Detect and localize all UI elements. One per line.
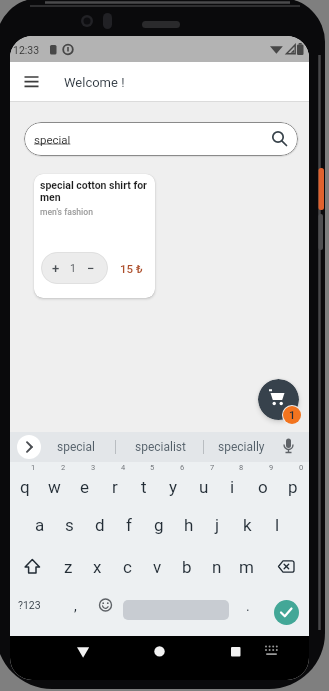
staticText: m (239, 557, 254, 577)
button[interactable]: y (159, 472, 188, 502)
button[interactable]: o (248, 472, 277, 502)
staticText: l (275, 515, 280, 535)
staticText: 3 (91, 463, 96, 472)
button[interactable]: j (203, 510, 232, 540)
button[interactable]: q (10, 472, 39, 502)
button[interactable]: + (46, 256, 66, 280)
button[interactable]: p (278, 472, 307, 502)
staticText: q (20, 477, 30, 497)
staticText: u (199, 477, 209, 497)
button[interactable]: x (83, 552, 112, 582)
staticText: special (34, 133, 71, 146)
button[interactable]: u (189, 472, 218, 502)
staticText: ?123 (18, 599, 41, 611)
staticText: 4 (121, 463, 126, 472)
staticText: p (288, 477, 298, 497)
button[interactable]: d (85, 510, 114, 540)
staticText: t (141, 477, 147, 497)
staticText: 6 (180, 463, 185, 472)
staticText: v (153, 557, 162, 577)
button[interactable] (67, 636, 99, 668)
staticText: y (169, 477, 178, 497)
staticText: 12:33 (13, 44, 40, 56)
button[interactable]: special (24, 122, 298, 156)
staticText: + (52, 261, 60, 276)
staticText: c (123, 557, 132, 577)
button[interactable] (17, 435, 41, 459)
button[interactable]: n (202, 552, 231, 582)
staticText: k (243, 515, 252, 535)
button[interactable]: special cotton shirt for men (34, 174, 155, 298)
button[interactable] (219, 636, 251, 668)
button[interactable]: h (174, 510, 203, 540)
staticText: h (184, 515, 194, 535)
button[interactable]: e (70, 472, 99, 502)
button[interactable] (18, 554, 46, 580)
staticText: 15 ₺ (120, 262, 143, 275)
button[interactable]: ?123 (11, 593, 47, 617)
button[interactable]: i (218, 472, 247, 502)
staticText: 2 (61, 463, 66, 472)
button[interactable]: f (114, 510, 143, 540)
button[interactable] (274, 600, 299, 625)
staticText: g (154, 515, 164, 535)
staticText: Welcome ! (64, 75, 125, 90)
staticText: special (57, 440, 95, 454)
button[interactable]: w (40, 472, 69, 502)
button[interactable]: special (41, 435, 111, 459)
button[interactable]: − (81, 256, 101, 280)
button[interactable]: l (263, 510, 292, 540)
button[interactable] (258, 379, 299, 420)
button[interactable]: s (55, 510, 84, 540)
staticText: n (212, 557, 222, 577)
button[interactable]: c (113, 552, 142, 582)
staticText: j (215, 515, 220, 535)
staticText: . (246, 598, 250, 614)
staticText: r (112, 477, 118, 497)
button[interactable]: k (233, 510, 262, 540)
button[interactable]: m (232, 552, 261, 582)
staticText: i (230, 477, 235, 497)
staticText: 7 (210, 463, 215, 472)
staticText: s (65, 515, 74, 535)
staticText: z (64, 557, 73, 577)
staticText: a (35, 515, 45, 535)
button[interactable]: r (100, 472, 129, 502)
button[interactable] (17, 71, 47, 93)
button[interactable]: specialist (120, 435, 200, 459)
button[interactable]: z (54, 552, 83, 582)
button[interactable] (123, 600, 229, 620)
staticText: 5 (150, 463, 155, 472)
button[interactable]: g (144, 510, 173, 540)
staticText: special cotton shirt for men (40, 179, 147, 204)
button[interactable]: specially (201, 435, 281, 459)
staticText: men's fashion (40, 207, 93, 217)
button[interactable]: t (129, 472, 158, 502)
staticText: 0 (299, 463, 304, 472)
staticText: w (48, 477, 61, 497)
button[interactable]: a (25, 510, 54, 540)
button[interactable]: , (65, 594, 85, 618)
staticText: − (87, 261, 95, 276)
staticText: specialist (135, 440, 186, 454)
button[interactable]: v (143, 552, 172, 582)
staticText: b (182, 557, 192, 577)
staticText: e (80, 477, 90, 497)
staticText: 1 (70, 262, 76, 274)
staticText: 9 (269, 463, 274, 472)
staticText: 1 (31, 463, 36, 472)
staticText: x (93, 557, 102, 577)
button[interactable] (143, 636, 175, 668)
staticText: f (126, 515, 132, 535)
staticText: 8 (239, 463, 244, 472)
staticText: specially (218, 440, 265, 454)
staticText: 1 (289, 409, 296, 422)
staticText: o (258, 477, 268, 497)
button[interactable]: . (238, 594, 258, 618)
button[interactable]: b (172, 552, 201, 582)
staticText: , (74, 598, 77, 614)
staticText: d (95, 515, 105, 535)
